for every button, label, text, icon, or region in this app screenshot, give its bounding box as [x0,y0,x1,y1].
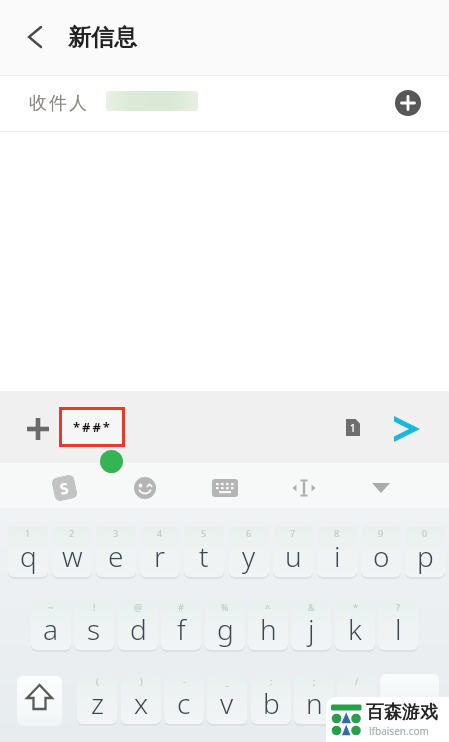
staticText: 新信息 [68,23,137,52]
staticText: 8 [334,527,340,539]
button[interactable]: ~ [31,600,71,650]
button[interactable]: 1 [346,419,360,436]
button[interactable]: 0 [405,526,445,577]
button[interactable]: : [251,674,291,724]
staticText: f [177,610,186,648]
button[interactable]: 4 [140,526,180,577]
button[interactable]: _ [207,674,247,724]
staticText: j [308,610,315,648]
staticText: *##* [73,418,112,436]
button[interactable]: @ [118,600,158,650]
button[interactable] [290,478,318,498]
button[interactable]: & [291,600,331,650]
button[interactable]: % [205,600,245,650]
staticText: 4 [157,527,163,539]
staticText: ~ [48,601,54,613]
staticText: z [91,684,104,722]
staticText: / [355,675,359,687]
button[interactable] [20,411,56,447]
button[interactable]: ? [378,600,418,650]
staticText: a [43,610,59,648]
staticText: 2 [69,527,75,539]
staticText: 0 [422,527,428,539]
staticText: % [221,601,229,613]
staticText: g [217,610,234,648]
button[interactable]: ( [77,674,117,724]
staticText: * [353,601,358,613]
button[interactable]: 9 [361,526,401,577]
button[interactable]: - [164,674,204,724]
staticText: 5 [201,527,207,539]
staticText: ; [313,675,316,687]
staticText: - [183,675,186,687]
button[interactable] [212,478,238,498]
staticText: 9 [378,527,384,539]
staticText: o [373,537,390,575]
button[interactable]: ) [121,674,161,724]
staticText: r [154,537,166,575]
button[interactable] [16,17,56,57]
staticText: 收件人 [28,92,88,115]
staticText: ? [396,601,400,613]
button[interactable]: ^ [248,600,288,650]
staticText: @ [134,601,143,613]
button[interactable]: # [161,600,201,650]
staticText: p [417,537,434,575]
staticText: n [306,684,323,722]
button[interactable]: ! [74,600,114,650]
button[interactable] [380,674,439,724]
staticText: : [270,675,273,687]
staticText: u [285,537,302,575]
button[interactable] [371,480,391,496]
staticText: m [344,684,370,722]
staticText: c [177,684,191,722]
button[interactable]: S [51,474,78,502]
staticText: d [130,610,147,648]
staticText: 3 [113,527,119,539]
staticText: l [395,610,402,648]
staticText: 1 [25,527,31,539]
button[interactable]: 2 [52,526,92,577]
button[interactable] [133,476,157,500]
staticText: b [263,684,280,722]
staticText: i [334,537,341,575]
button[interactable] [395,90,421,116]
button[interactable] [392,415,422,443]
button[interactable]: 5 [184,526,224,577]
staticText: ) [140,675,143,687]
staticText: q [20,537,37,575]
staticText: 1 [350,421,356,435]
staticText: & [308,601,315,613]
staticText: S [58,477,71,499]
button[interactable]: 3 [96,526,136,577]
staticText: ^ [265,601,271,613]
button[interactable]: *##* [59,407,125,447]
staticText: w [62,537,83,575]
button[interactable] [17,676,62,726]
staticText: # [178,601,184,613]
button[interactable]: 8 [317,526,357,577]
button[interactable]: 收件人 [0,76,449,131]
button[interactable]: 7 [273,526,313,577]
button[interactable]: 1 [8,526,48,577]
staticText: h [260,610,277,648]
staticText: ( [96,675,99,687]
staticText: ! [93,601,96,613]
staticText: 7 [290,527,296,539]
staticText: s [87,610,101,648]
staticText: k [348,610,362,648]
button[interactable]: * [335,600,375,650]
staticText: e [108,537,124,575]
staticText: t [199,537,209,575]
staticText: y [242,537,256,575]
button[interactable]: / [337,674,377,724]
staticText: v [220,684,234,722]
staticText: 6 [246,527,252,539]
button[interactable]: 6 [229,526,269,577]
staticText: 百森游戏 [366,701,438,724]
staticText: x [134,684,149,722]
staticText: _ [225,675,229,687]
button[interactable]: ; [294,674,334,724]
staticText: lfbaisen.com [369,724,429,738]
